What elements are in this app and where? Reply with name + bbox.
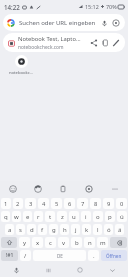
staticText: ü [120, 213, 124, 221]
button[interactable]: j [71, 224, 80, 235]
button[interactable]: a [5, 224, 14, 235]
staticText: 0 [120, 200, 124, 208]
staticText: Öffnen [106, 253, 122, 259]
button[interactable]: r [34, 211, 43, 222]
button[interactable]: k [82, 224, 91, 235]
staticText: o [96, 213, 100, 221]
button[interactable]: w [12, 211, 21, 222]
staticText: w [14, 213, 19, 221]
button[interactable]: f [38, 224, 47, 235]
button[interactable]: s [16, 224, 25, 235]
button[interactable]: d [27, 224, 36, 235]
button[interactable]: c [45, 237, 56, 248]
button[interactable]: q [1, 211, 10, 222]
button[interactable]: 9 [103, 198, 114, 209]
button[interactable]: DE [33, 250, 86, 261]
staticText: c [49, 239, 52, 247]
staticText: Notebook Test, Lapto… [18, 35, 81, 43]
staticText: u [72, 213, 76, 221]
button[interactable]: u [69, 211, 79, 222]
button[interactable]: Share [88, 37, 99, 48]
staticText: k [85, 226, 89, 234]
staticText: notebookcheck.com [18, 44, 64, 51]
button[interactable]: l [93, 224, 102, 235]
button[interactable]: h [60, 224, 69, 235]
staticText: z [61, 213, 64, 221]
button[interactable]: e [23, 211, 32, 222]
staticText: !#1 [6, 252, 14, 259]
staticText: Suchen oder URL eingeben [19, 19, 97, 27]
button[interactable]: Home [64, 263, 96, 277]
staticText: m [100, 239, 106, 247]
staticText: . [93, 252, 95, 260]
staticText: d [30, 226, 34, 234]
button[interactable]: Google Lens [111, 18, 121, 28]
button[interactable]: More [102, 181, 128, 197]
button[interactable]: x [32, 237, 43, 248]
staticText: 2 [16, 200, 20, 208]
staticText: r [37, 213, 40, 221]
button[interactable]: Clipboard [50, 181, 76, 197]
button[interactable]: i [81, 211, 91, 222]
staticText: 1 [4, 200, 8, 208]
button[interactable]: Back [96, 263, 128, 277]
staticText: t [49, 213, 52, 221]
button[interactable]: g [49, 224, 58, 235]
staticText: DE [57, 253, 63, 259]
button[interactable]: 3 [25, 198, 36, 209]
staticText: i [85, 213, 87, 221]
staticText: 8 [94, 200, 98, 208]
staticText: 14:22 [4, 3, 20, 11]
button[interactable]: ä [115, 224, 124, 235]
staticText: g [52, 226, 56, 234]
button[interactable]: / [20, 250, 31, 261]
staticText: 7 [81, 200, 85, 208]
staticText: j [75, 226, 77, 234]
button[interactable]: Notebook Test, Lapto… [3, 33, 125, 52]
button[interactable]: 7 [77, 198, 88, 209]
button[interactable]: 1 [1, 198, 11, 209]
button[interactable]: GIF [25, 181, 50, 197]
staticText: 3 [29, 200, 33, 208]
staticText: n [88, 239, 92, 247]
button[interactable]: Voice input [0, 263, 32, 277]
button[interactable]: Emoji [0, 181, 25, 197]
staticText: v [62, 239, 66, 247]
button[interactable]: p [105, 211, 115, 222]
button[interactable]: 0 [116, 198, 127, 209]
button[interactable]: o [93, 211, 103, 222]
staticText: 6 [68, 200, 72, 208]
button[interactable]: !#1 [1, 250, 18, 261]
staticText: 5 [55, 200, 59, 208]
button[interactable]: t [45, 211, 55, 222]
button[interactable]: notebookc… [6, 54, 36, 77]
button[interactable]: v [58, 237, 69, 248]
button[interactable]: Shift [1, 237, 17, 248]
button[interactable]: n [84, 237, 95, 248]
button[interactable]: 2 [13, 198, 23, 209]
button[interactable]: Recents [32, 263, 64, 277]
staticText: q [4, 213, 8, 221]
button[interactable]: b [71, 237, 82, 248]
button[interactable]: Voice search [99, 18, 109, 28]
staticText: 9 [107, 200, 111, 208]
button[interactable]: ö [104, 224, 113, 235]
button[interactable]: m [97, 237, 108, 248]
button[interactable]: Backspace [110, 237, 127, 248]
button[interactable]: Edit [110, 37, 121, 48]
button[interactable]: ü [117, 211, 127, 222]
button[interactable]: z [57, 211, 67, 222]
button[interactable]: . [88, 250, 99, 261]
button[interactable]: Copy [99, 37, 110, 48]
button[interactable]: 5 [51, 198, 62, 209]
button[interactable]: 6 [64, 198, 75, 209]
button[interactable]: Öffnen [101, 250, 127, 261]
button[interactable]: Suchen oder URL eingeben [3, 14, 125, 31]
button[interactable]: 8 [90, 198, 101, 209]
staticText: a [8, 226, 12, 234]
staticText: ä [118, 226, 122, 234]
button[interactable]: y [19, 237, 30, 248]
button[interactable]: 4 [38, 198, 49, 209]
button[interactable]: Settings [76, 181, 102, 197]
staticText: f [41, 226, 44, 234]
